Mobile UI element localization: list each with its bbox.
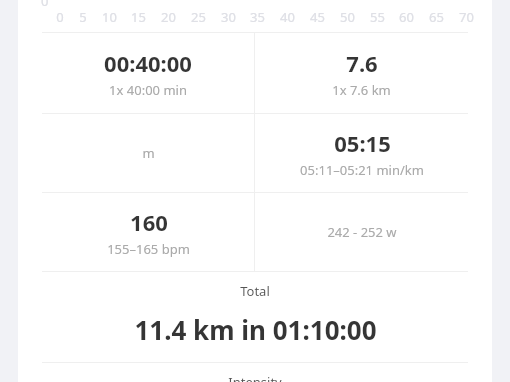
staticText: 1x 40:00 min: [109, 81, 187, 99]
button[interactable]: 05:15: [255, 114, 468, 192]
staticText: m: [142, 144, 155, 162]
staticText: 160: [130, 207, 168, 237]
staticText: 0: [41, 0, 49, 10]
button[interactable]: 7.6: [255, 33, 468, 113]
staticText: Total: [240, 282, 270, 300]
button[interactable]: 160: [42, 193, 254, 271]
button[interactable]: m: [42, 114, 254, 192]
staticText: 20: [161, 8, 176, 26]
staticText: 45: [310, 8, 325, 26]
staticText: 242 - 252 w: [327, 223, 397, 241]
staticText: 0: [56, 8, 64, 26]
button[interactable]: 00:40:00: [42, 33, 254, 113]
staticText: 00:40:00: [104, 48, 192, 78]
staticText: 65: [429, 8, 444, 26]
staticText: 40: [280, 8, 295, 26]
staticText: 30: [221, 8, 236, 26]
button[interactable]: Intensity section: [18, 363, 492, 382]
button[interactable]: 242 - 252 w: [255, 193, 468, 271]
staticText: 11.4 km in 01:10:00: [134, 312, 377, 347]
staticText: Intensity: [228, 373, 282, 382]
staticText: 10: [102, 8, 117, 26]
staticText: 15: [131, 8, 146, 26]
staticText: 50: [340, 8, 355, 26]
staticText: 1x 7.6 km: [332, 81, 391, 99]
staticText: 155–165 bpm: [107, 240, 190, 258]
staticText: 55: [370, 8, 385, 26]
staticText: 35: [250, 8, 265, 26]
staticText: 5: [79, 8, 87, 26]
staticText: 05:15: [334, 128, 391, 158]
button[interactable]: Total: [18, 272, 492, 362]
staticText: 60: [399, 8, 414, 26]
staticText: 05:11–05:21 min/km: [300, 161, 424, 179]
staticText: 7.6: [346, 48, 378, 78]
staticText: 25: [191, 8, 206, 26]
staticText: 70: [459, 8, 474, 26]
